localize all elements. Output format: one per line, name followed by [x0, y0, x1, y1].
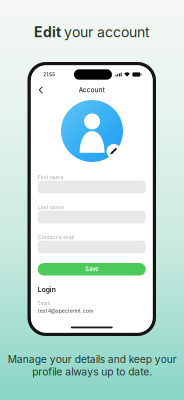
staticText: Contact e-mail [38, 234, 74, 240]
button[interactable]: Save [38, 263, 146, 275]
staticText: 21:55 [43, 72, 55, 77]
staticText: Save [85, 266, 98, 273]
staticText: First name [38, 174, 64, 180]
button[interactable]: Edit photo [106, 144, 121, 158]
staticText: Manage your details and keep your profil… [7, 353, 176, 378]
staticText: Last name [38, 204, 64, 210]
staticText: test4@specterint.com [38, 307, 94, 314]
staticText: Edit your account [34, 24, 150, 40]
button[interactable]: Back [35, 84, 47, 96]
staticText: Account [79, 86, 105, 94]
staticText: Email [38, 300, 50, 306]
staticText: Login [38, 285, 56, 294]
